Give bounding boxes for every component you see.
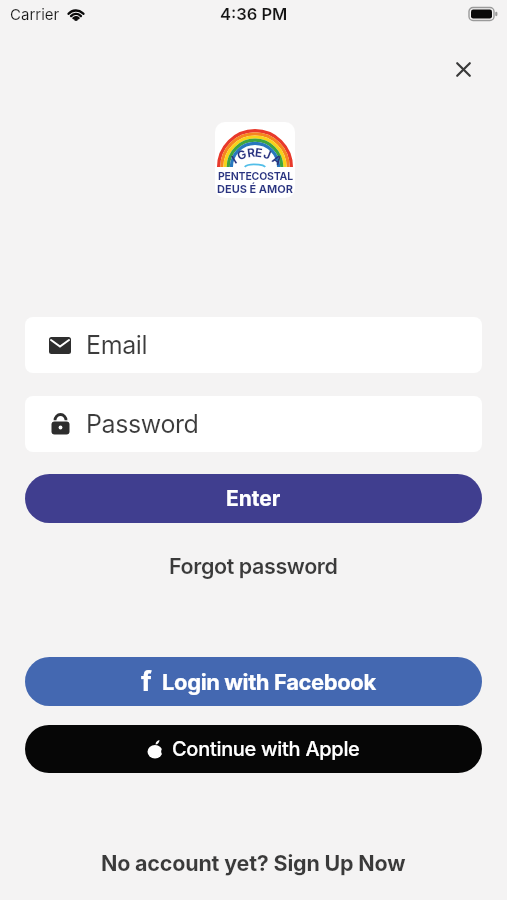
staticText: J — [261, 146, 274, 163]
staticText: f — [141, 665, 152, 698]
staticText: Continue with Apple — [172, 737, 360, 761]
staticText: Email — [86, 330, 148, 360]
button[interactable]: Forgot password — [169, 553, 338, 579]
staticText: G — [235, 146, 249, 163]
staticText: Enter — [226, 486, 281, 511]
staticText: E — [254, 144, 264, 160]
staticText: Forgot password — [169, 553, 338, 579]
button[interactable]: Password — [25, 396, 482, 452]
staticText: DEUS É AMOR — [217, 182, 293, 195]
staticText: I — [229, 152, 240, 167]
staticText: No account yet? Sign Up Now — [101, 850, 406, 876]
staticText: 4:36 PM — [220, 4, 288, 24]
button[interactable]: f — [25, 657, 482, 706]
button[interactable]: Enter — [25, 474, 482, 523]
staticText: Password — [86, 409, 199, 439]
button[interactable]: Email — [25, 317, 482, 373]
button[interactable]: No account yet? Sign Up Now — [101, 850, 406, 876]
staticText: A — [269, 151, 285, 168]
button[interactable]: Continue with Apple — [25, 725, 482, 773]
staticText: Login with Facebook — [162, 669, 376, 696]
staticText: R — [246, 144, 256, 160]
staticText: PENTECOSTAL — [218, 170, 293, 183]
button[interactable] — [441, 47, 485, 91]
staticText: Carrier — [10, 5, 60, 23]
